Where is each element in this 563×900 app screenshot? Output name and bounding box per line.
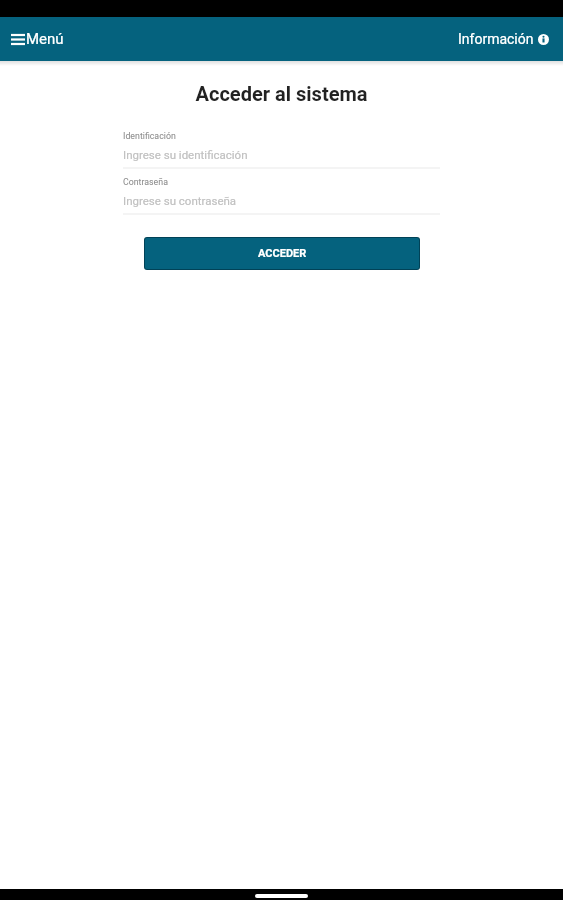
staticText: ACCEDER: [258, 247, 307, 260]
staticText: Acceder al sistema: [0, 82, 563, 105]
staticText: Contraseña: [123, 177, 168, 187]
staticText: Menú: [26, 30, 64, 48]
staticText: Identificación: [123, 131, 176, 141]
staticText: Ingrese su identificación: [123, 148, 248, 161]
button[interactable]: ACCEDER: [144, 237, 420, 270]
button[interactable]: Contraseña: [123, 177, 440, 215]
button[interactable]: Menú: [0, 21, 74, 57]
staticText: Información: [458, 31, 534, 47]
button[interactable]: Identificación: [123, 131, 440, 169]
other: Menú: [11, 33, 25, 45]
button[interactable]: Información: [448, 22, 563, 56]
staticText: Ingrese su contraseña: [123, 194, 237, 207]
other: Información: [538, 34, 549, 45]
